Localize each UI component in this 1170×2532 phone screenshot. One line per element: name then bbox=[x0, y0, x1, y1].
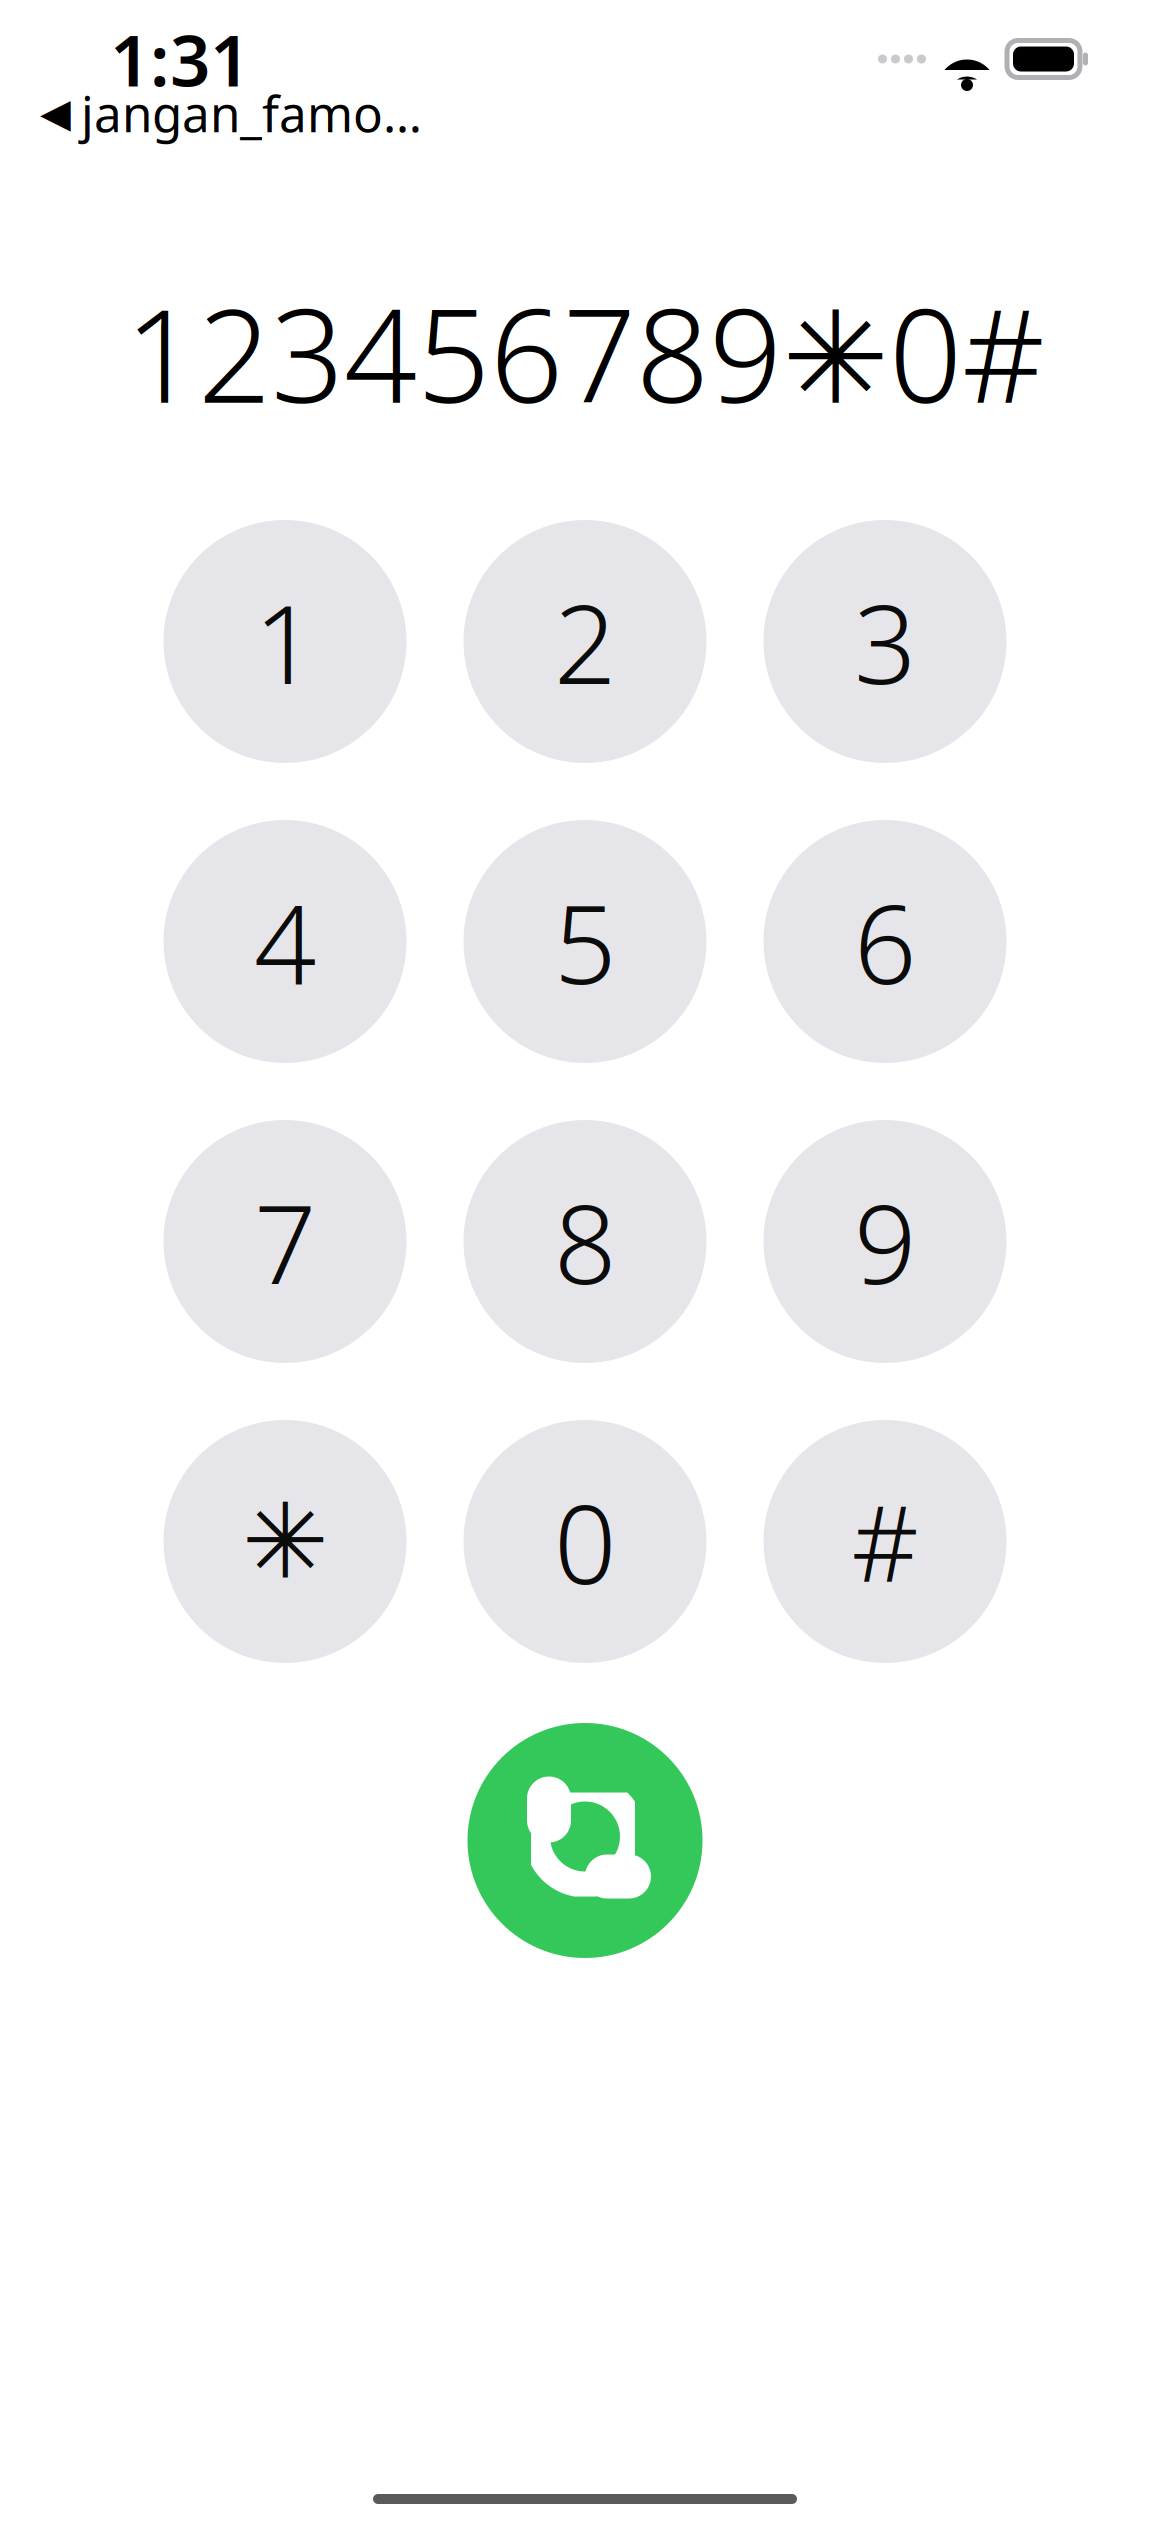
button[interactable]: Call bbox=[467, 1723, 702, 1958]
button[interactable]: 7 bbox=[163, 1120, 406, 1363]
staticText: ✳ bbox=[241, 1482, 328, 1600]
button[interactable]: # bbox=[763, 1420, 1006, 1663]
staticText: 3 bbox=[854, 569, 916, 714]
button[interactable]: 5 bbox=[463, 820, 706, 1063]
staticText: 6 bbox=[854, 869, 916, 1014]
button[interactable]: 9 bbox=[763, 1120, 1006, 1363]
button[interactable]: 2 bbox=[463, 520, 706, 763]
button[interactable]: ◀ bbox=[36, 74, 426, 152]
button[interactable]: 3 bbox=[763, 520, 1006, 763]
staticText: 7 bbox=[254, 1169, 316, 1314]
staticText: 123456789✳0# bbox=[125, 268, 1045, 438]
staticText: 1 bbox=[254, 569, 316, 714]
staticText: jangan_famo… bbox=[81, 80, 422, 146]
staticText: 0 bbox=[554, 1469, 616, 1614]
button[interactable]: ✳ bbox=[163, 1420, 406, 1663]
staticText: 2 bbox=[554, 569, 616, 714]
button[interactable]: 0 bbox=[463, 1420, 706, 1663]
button[interactable]: 1 bbox=[163, 520, 406, 763]
staticText: ◀ bbox=[40, 90, 71, 136]
staticText: 9 bbox=[854, 1169, 916, 1314]
staticText: 4 bbox=[254, 869, 316, 1014]
staticText: 1:31 bbox=[110, 12, 250, 106]
button[interactable]: 8 bbox=[463, 1120, 706, 1363]
staticText: 8 bbox=[554, 1169, 616, 1314]
button[interactable]: 4 bbox=[163, 820, 406, 1063]
button[interactable]: 6 bbox=[763, 820, 1006, 1063]
staticText: 5 bbox=[554, 869, 616, 1014]
staticText: # bbox=[851, 1472, 918, 1610]
